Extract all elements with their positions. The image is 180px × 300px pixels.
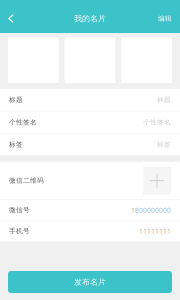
staticText: 手机号 [9,227,30,235]
staticText: 个性签名 [143,118,171,126]
staticText: 标题 [157,96,171,104]
staticText: 个性签名 [9,118,37,126]
button[interactable]: 标签 [0,134,180,156]
staticText: 编辑 [158,14,172,23]
staticText: 标签 [9,140,23,149]
button[interactable]: 微信二维码 [0,162,180,200]
staticText: 11111111 [139,227,171,236]
staticText: 标签 [157,140,171,149]
button[interactable]: 微信号 [0,200,180,221]
button[interactable]: 发布名片 [8,271,172,293]
staticText: 标题 [9,96,23,104]
button[interactable]: 手机号 [0,221,180,242]
staticText: 微信二维码 [9,176,44,185]
staticText: 1800000000 [131,206,171,215]
button[interactable]: 编辑 [150,8,180,29]
button[interactable]: 标题 [0,89,180,111]
staticText: 微信号 [9,206,30,214]
button[interactable]: 个性签名 [0,111,180,134]
staticText: 我的名片 [74,13,106,24]
button[interactable]: Back [0,8,22,29]
staticText: 发布名片 [74,277,106,287]
